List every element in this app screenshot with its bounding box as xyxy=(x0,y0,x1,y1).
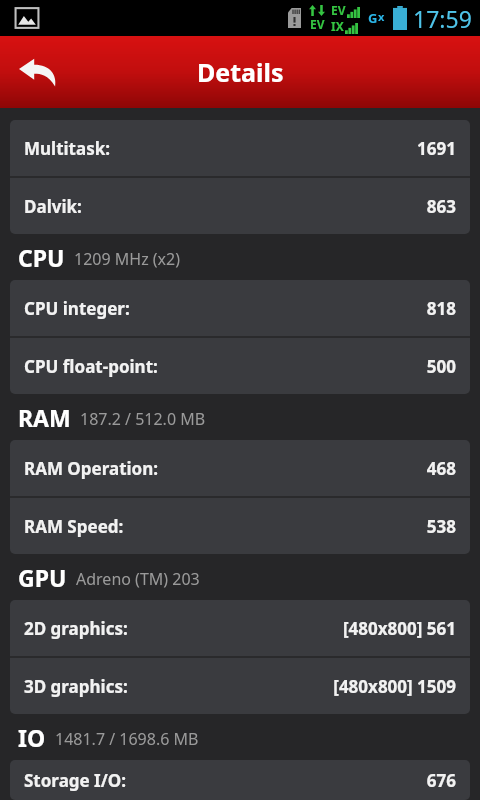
staticText: x xyxy=(378,9,385,24)
staticText: 187.2 / 512.0 MB xyxy=(80,408,206,430)
staticText: EV xyxy=(310,16,325,32)
staticText: Multitask: xyxy=(24,137,111,160)
staticText: CPU integer: xyxy=(24,297,130,320)
staticText: IO xyxy=(18,722,46,753)
staticText: RAM Operation: xyxy=(24,457,159,480)
staticText: 500 xyxy=(426,355,456,378)
staticText: Storage I/O: xyxy=(24,769,127,792)
button[interactable]: 3D graphics: xyxy=(10,658,470,714)
staticText: Details xyxy=(197,55,284,89)
staticText: [480x800] 561 xyxy=(342,617,456,640)
button[interactable]: CPU float-point: xyxy=(10,338,470,394)
staticText: 818 xyxy=(426,297,456,320)
staticText: RAM xyxy=(18,402,71,433)
staticText: Dalvik: xyxy=(24,195,82,218)
button[interactable]: Multitask: xyxy=(10,120,470,176)
staticText: Adreno (TM) 203 xyxy=(76,568,200,590)
staticText: GPU xyxy=(18,562,67,593)
staticText: 3D graphics: xyxy=(24,675,128,698)
button[interactable]: RAM Operation: xyxy=(10,440,470,496)
button[interactable]: Dalvik: xyxy=(10,178,470,234)
staticText: IX xyxy=(331,18,344,34)
staticText: [480x800] 1509 xyxy=(333,675,456,698)
staticText: 1209 MHz (x2) xyxy=(74,248,181,270)
staticText: CPU xyxy=(18,242,65,273)
staticText: 676 xyxy=(426,769,456,792)
button[interactable]: RAM Speed: xyxy=(10,498,470,554)
staticText: 1691 xyxy=(417,137,456,160)
button[interactable]: Back xyxy=(10,44,66,100)
staticText: 17:59 xyxy=(413,3,472,34)
staticText: 863 xyxy=(426,195,456,218)
staticText: EV xyxy=(331,2,346,18)
staticText: CPU float-point: xyxy=(24,355,158,378)
button[interactable]: 2D graphics: xyxy=(10,600,470,656)
staticText: G xyxy=(368,9,378,27)
button[interactable]: CPU integer: xyxy=(10,280,470,336)
button[interactable]: Storage I/O: xyxy=(10,760,470,800)
staticText: RAM Speed: xyxy=(24,515,124,538)
staticText: 538 xyxy=(426,515,456,538)
staticText: 468 xyxy=(426,457,456,480)
staticText: 2D graphics: xyxy=(24,617,128,640)
staticText: 1481.7 / 1698.6 MB xyxy=(55,728,199,750)
